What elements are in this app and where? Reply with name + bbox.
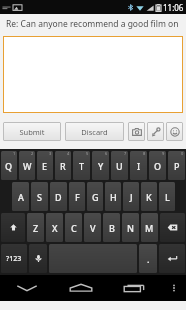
button[interactable]: B bbox=[103, 213, 120, 242]
staticText: 11:06 bbox=[163, 2, 184, 13]
button[interactable]: K bbox=[141, 182, 157, 211]
button[interactable]: Submit bbox=[3, 122, 61, 141]
button[interactable]: . bbox=[139, 244, 157, 273]
staticText: R bbox=[60, 160, 66, 172]
button[interactable]: W bbox=[19, 151, 35, 180]
button[interactable]: Discard bbox=[65, 122, 124, 141]
staticText: Q bbox=[5, 160, 13, 172]
staticText: K bbox=[146, 191, 152, 203]
button[interactable]: ?123 bbox=[1, 244, 27, 273]
staticText: . bbox=[147, 253, 150, 265]
staticText: Submit bbox=[19, 127, 45, 137]
staticText: Re: Can anyone recommend a good film on bbox=[6, 18, 179, 30]
button[interactable]: G bbox=[87, 182, 103, 211]
staticText: ?123 bbox=[6, 254, 22, 264]
staticText: 8 bbox=[143, 151, 146, 156]
button[interactable]: T bbox=[73, 151, 90, 180]
staticText: G bbox=[92, 191, 99, 203]
staticText: X bbox=[52, 222, 58, 234]
staticText: C bbox=[71, 222, 77, 234]
staticText: 0 bbox=[181, 151, 184, 156]
button[interactable]: J bbox=[123, 182, 139, 211]
button[interactable]: L bbox=[159, 182, 175, 211]
staticText: 7 bbox=[124, 151, 127, 156]
button[interactable]: Shift bbox=[1, 213, 25, 242]
button[interactable]: S bbox=[31, 182, 48, 211]
button[interactable] bbox=[3, 36, 183, 113]
button[interactable]: V bbox=[84, 213, 101, 242]
staticText: 2 bbox=[31, 151, 34, 156]
staticText: W bbox=[23, 160, 32, 172]
staticText: Discard bbox=[81, 127, 108, 137]
staticText: L bbox=[165, 191, 170, 203]
staticText: 5 bbox=[86, 151, 89, 156]
button[interactable]: H bbox=[105, 182, 121, 211]
button[interactable]: P bbox=[168, 151, 185, 180]
button[interactable]: C bbox=[65, 213, 82, 242]
staticText: 6 bbox=[105, 151, 108, 156]
staticText: E bbox=[42, 160, 48, 172]
staticText: F bbox=[75, 191, 80, 203]
button[interactable]: Voice input bbox=[29, 244, 47, 273]
button[interactable]: Emoji bbox=[166, 122, 183, 141]
staticText: N bbox=[127, 222, 134, 234]
staticText: Z bbox=[33, 222, 39, 234]
button[interactable]: F bbox=[69, 182, 85, 211]
button[interactable]: D bbox=[50, 182, 67, 211]
staticText: T bbox=[79, 160, 85, 172]
button[interactable]: Hide keyboard bbox=[0, 275, 54, 301]
button[interactable]: Attach bbox=[147, 122, 164, 141]
button[interactable]: Recent apps bbox=[108, 275, 162, 301]
button[interactable]: Camera bbox=[128, 122, 145, 141]
button[interactable]: Space bbox=[49, 244, 137, 273]
staticText: J bbox=[130, 191, 133, 203]
staticText: P bbox=[174, 160, 180, 172]
staticText: 4 bbox=[67, 151, 70, 156]
button[interactable]: M bbox=[141, 213, 158, 242]
button[interactable]: Y bbox=[92, 151, 109, 180]
staticText: Y bbox=[98, 160, 104, 172]
staticText: A bbox=[18, 191, 24, 203]
button[interactable]: I bbox=[130, 151, 147, 180]
button[interactable]: Backspace bbox=[160, 213, 185, 242]
button[interactable]: O bbox=[149, 151, 166, 180]
staticText: 1 bbox=[13, 151, 16, 156]
staticText: B bbox=[109, 222, 115, 234]
button[interactable]: Z bbox=[27, 213, 44, 242]
staticText: O bbox=[154, 160, 162, 172]
staticText: D bbox=[55, 191, 62, 203]
staticText: U bbox=[116, 160, 123, 172]
button[interactable]: A bbox=[12, 182, 29, 211]
staticText: H bbox=[110, 191, 117, 203]
button[interactable]: Home bbox=[54, 275, 108, 301]
staticText: I bbox=[137, 160, 141, 172]
button[interactable]: E bbox=[37, 151, 53, 180]
staticText: 9 bbox=[162, 151, 165, 156]
staticText: V bbox=[90, 222, 96, 234]
button[interactable]: X bbox=[46, 213, 63, 242]
button[interactable]: More options bbox=[162, 275, 186, 301]
button[interactable]: N bbox=[122, 213, 139, 242]
button[interactable]: Enter bbox=[159, 244, 185, 273]
staticText: S bbox=[37, 191, 42, 203]
button[interactable]: U bbox=[111, 151, 128, 180]
staticText: M bbox=[145, 222, 154, 234]
button[interactable]: R bbox=[55, 151, 71, 180]
button[interactable]: Q bbox=[1, 151, 17, 180]
staticText: 3 bbox=[49, 151, 52, 156]
